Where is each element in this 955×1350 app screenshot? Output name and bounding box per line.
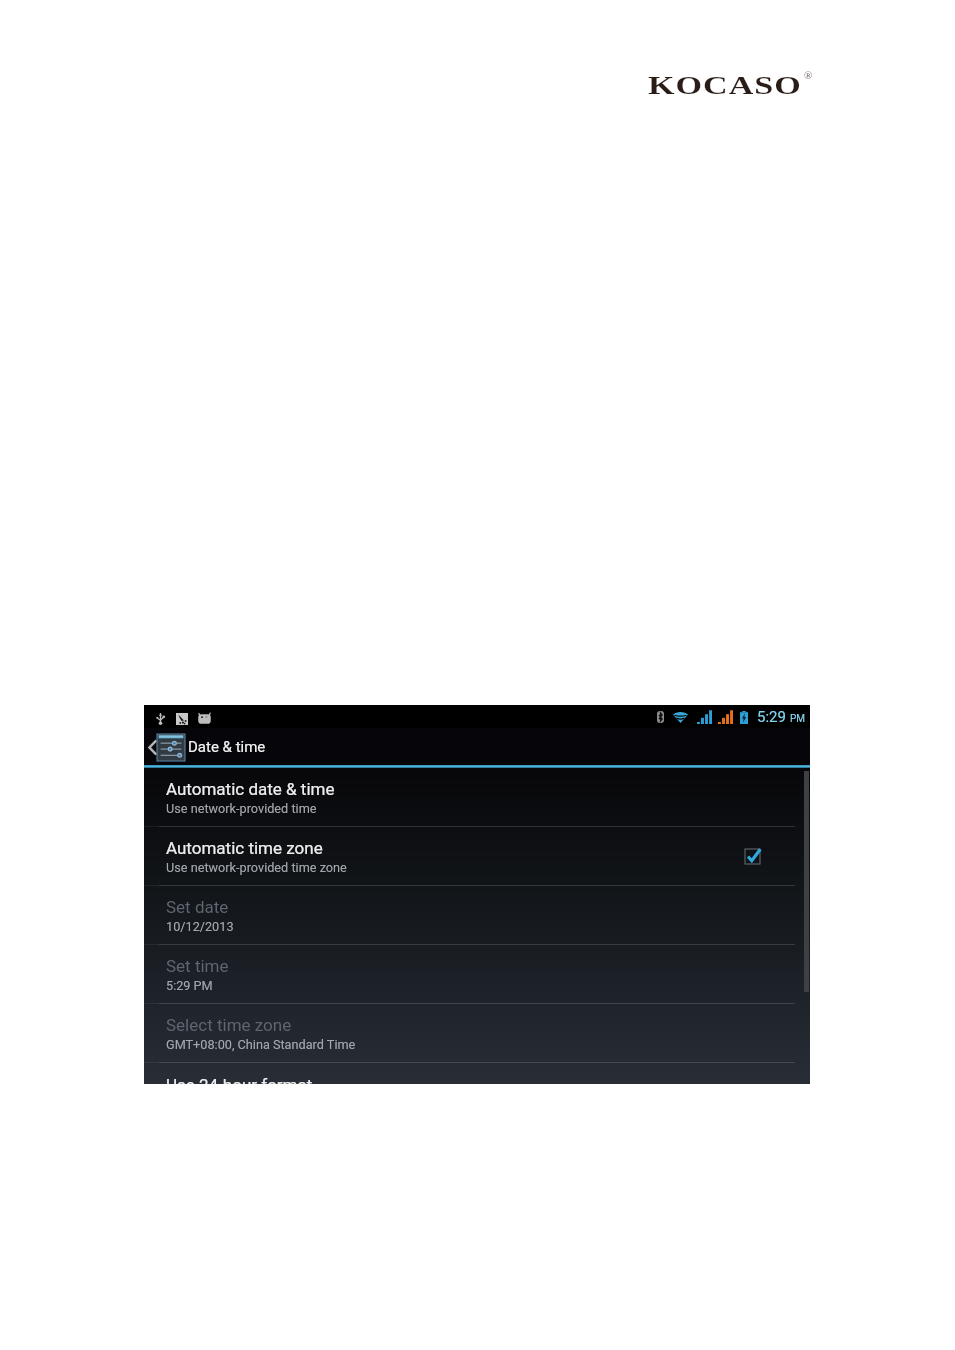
staticText: Set time	[166, 956, 229, 976]
staticText: GMT+08:00, China Standard Time	[166, 1037, 356, 1052]
staticText: Select time zone	[166, 1015, 292, 1035]
staticText: Use network-provided time zone	[166, 860, 347, 875]
staticText: Use network-provided time	[166, 801, 317, 816]
button[interactable]: Select time zone	[144, 1004, 810, 1062]
other: Back	[148, 740, 156, 755]
staticText: 5:29 PM	[166, 978, 213, 993]
staticText: Date & time	[188, 738, 266, 756]
button[interactable]: Automatic date & time	[144, 768, 810, 826]
staticText: Use 24-hour format	[166, 1075, 313, 1084]
staticText: Set date	[166, 897, 229, 917]
staticText: 10/12/2013	[166, 919, 234, 934]
staticText: PM	[790, 713, 806, 725]
button[interactable]: Set date	[144, 886, 810, 944]
staticText: ®	[804, 69, 813, 81]
button[interactable]: Set time	[144, 945, 810, 1003]
staticText: Automatic time zone	[166, 838, 323, 858]
button[interactable]: Automatic time zone checkbox	[745, 849, 760, 864]
button[interactable]: Back	[144, 728, 266, 766]
button[interactable]: Use 24-hour format	[144, 1063, 810, 1084]
staticText: KOCASO	[648, 72, 802, 99]
staticText: 5:29	[757, 708, 786, 726]
staticText: Automatic date & time	[166, 779, 335, 799]
button[interactable]: Automatic time zone	[144, 827, 810, 885]
